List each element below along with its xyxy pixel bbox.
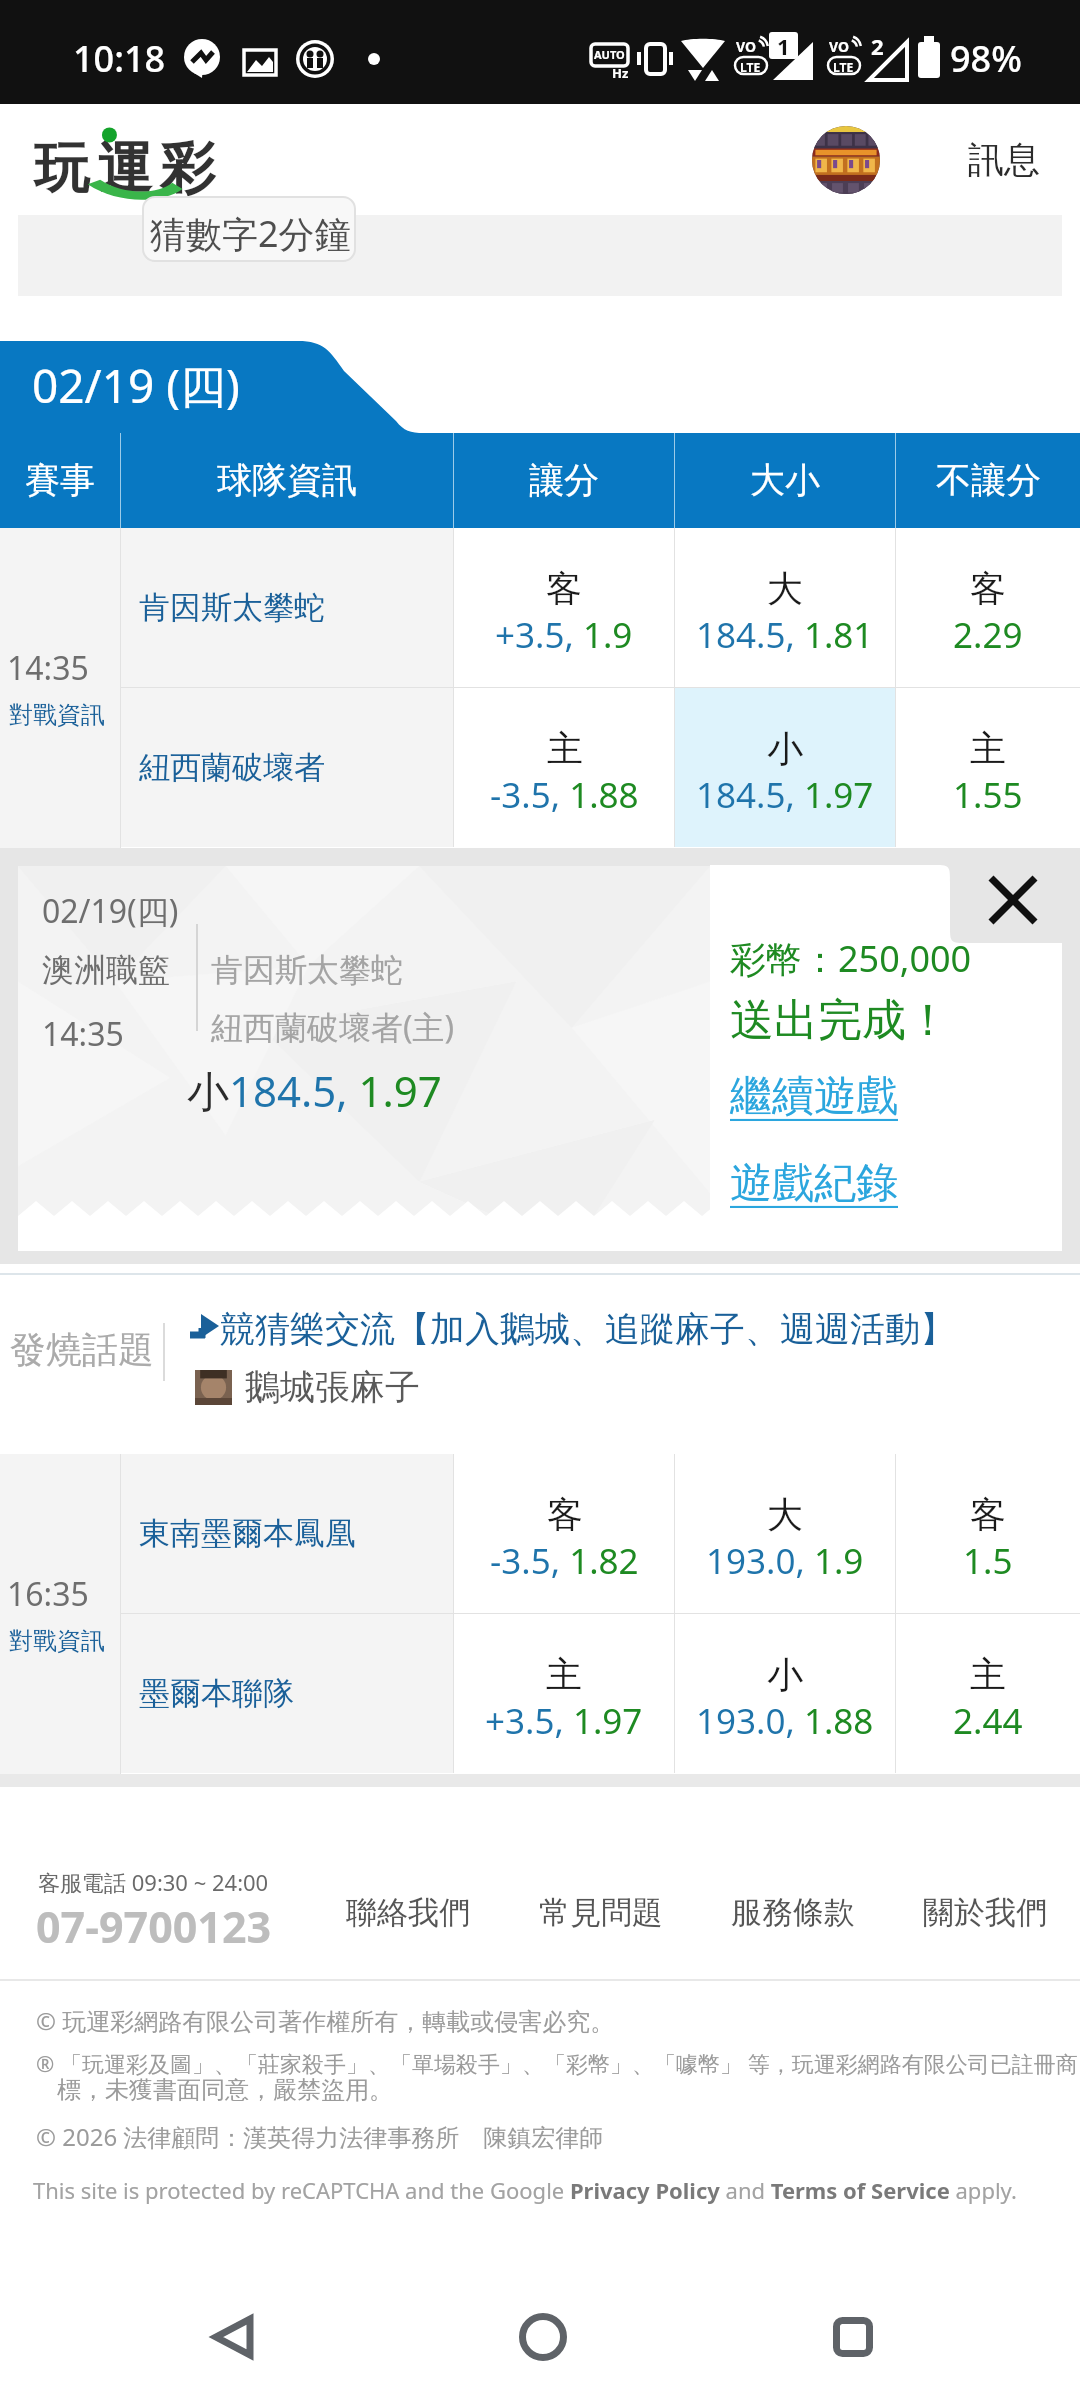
staticText: 澳洲職籃: [42, 950, 170, 990]
staticText: VO: [829, 37, 850, 56]
button[interactable]: 客: [454, 528, 674, 687]
staticText: 02/19(四): [42, 889, 179, 933]
staticText: 主: [546, 1652, 582, 1697]
button[interactable]: 客: [896, 528, 1080, 687]
staticText: VO: [736, 37, 757, 56]
staticText: © 玩運彩網路有限公司著作權所有，轉載或侵害必究。: [36, 2004, 615, 2037]
button[interactable]: 客: [896, 1454, 1080, 1613]
button[interactable]: Back: [187, 2291, 279, 2383]
staticText: 猜數字2分鐘: [150, 209, 351, 258]
button[interactable]: 關於我們: [909, 1881, 1061, 1943]
staticText: 不讓分: [936, 458, 1041, 502]
staticText: LTE: [740, 59, 761, 75]
button[interactable]: 小: [675, 1614, 895, 1773]
staticText: 讓分: [529, 458, 599, 502]
staticText: AUTO: [594, 47, 625, 62]
button[interactable]: 鵝城張麻子: [195, 1365, 420, 1409]
button[interactable]: 主: [896, 688, 1080, 847]
button[interactable]: Home: [497, 2291, 589, 2383]
staticText: 肯因斯太攀蛇: [139, 588, 325, 627]
staticText: 07-9700123: [36, 1897, 272, 1956]
button[interactable]: 主: [454, 1614, 674, 1773]
staticText: 東南墨爾本鳳凰: [139, 1514, 356, 1553]
button[interactable]: 肯因斯太攀蛇: [121, 528, 453, 687]
button[interactable]: 大: [675, 1454, 895, 1613]
staticText: 14:35: [42, 1012, 124, 1056]
staticText: 聯絡我們: [346, 1893, 470, 1932]
staticText: 紐西蘭破壞者: [139, 748, 325, 787]
staticText: 2.44: [953, 1697, 1023, 1745]
button[interactable]: 東南墨爾本鳳凰: [121, 1454, 453, 1613]
staticText: 主: [547, 726, 583, 771]
staticText: 賽事: [25, 458, 95, 502]
staticText: 常見問題: [539, 1893, 663, 1932]
button[interactable]: 主: [454, 688, 674, 847]
staticText: LTE: [833, 59, 854, 75]
staticText: +3.5, 1.97: [485, 1697, 643, 1745]
button[interactable]: 主: [896, 1614, 1080, 1773]
staticText: -3.5, 1.82: [490, 1537, 639, 1585]
staticText: 競猜樂交流【加入鵝城、追蹤麻子、週週活動】: [220, 1307, 955, 1351]
staticText: 主: [970, 1652, 1006, 1697]
button[interactable]: 大: [675, 528, 895, 687]
button[interactable]: 客: [454, 1454, 674, 1613]
button[interactable]: 常見問題: [525, 1881, 677, 1943]
button[interactable]: 對戰資訊: [9, 700, 105, 730]
staticText: 16:35: [7, 1572, 89, 1616]
staticText: This site is protected by reCAPTCHA and …: [33, 2175, 1017, 2205]
staticText: 1.55: [953, 771, 1023, 819]
staticText: 大小: [750, 458, 820, 502]
staticText: 服務條款: [731, 1893, 855, 1932]
staticText: 02/19 (四): [32, 354, 240, 417]
staticText: 10:18: [73, 34, 166, 83]
staticText: 客: [970, 566, 1006, 611]
staticText: 客: [547, 1492, 583, 1537]
staticText: 184.5, 1.97: [696, 771, 874, 819]
staticText: 193.0, 1.9: [706, 1537, 864, 1585]
button[interactable]: 遊戲紀錄: [730, 1157, 898, 1210]
staticText: Hz: [612, 64, 629, 82]
staticText: 大: [767, 566, 803, 611]
button[interactable]: 競猜樂交流【加入鵝城、追蹤麻子、週週活動】: [190, 1307, 955, 1351]
staticText: ® 「玩運彩及圖」、「莊家殺手」、「單場殺手」、「彩幣」、「噱幣」 等，玩運彩網…: [36, 2048, 1078, 2078]
staticText: 193.0, 1.88: [696, 1697, 874, 1745]
button[interactable]: Account: [812, 126, 880, 194]
staticText: 2: [871, 31, 884, 61]
staticText: 小: [767, 1652, 803, 1697]
staticText: +3.5, 1.9: [495, 611, 633, 659]
staticText: 肯因斯太攀蛇: [211, 950, 403, 990]
button[interactable]: 紐西蘭破壞者: [121, 688, 453, 847]
button[interactable]: 墨爾本聯隊: [121, 1614, 453, 1773]
button[interactable]: 訊息: [968, 137, 1040, 182]
staticText: 客: [970, 1492, 1006, 1537]
staticText: 客: [546, 566, 582, 611]
staticText: 98%: [950, 34, 1022, 83]
staticText: 紐西蘭破壞者(主): [211, 1005, 455, 1049]
staticText: 大: [767, 1492, 803, 1537]
staticText: 墨爾本聯隊: [139, 1674, 294, 1713]
staticText: 送出完成！: [730, 993, 950, 1048]
staticText: 關於我們: [923, 1893, 1047, 1932]
staticText: 客服電話 09:30 ~ 24:00: [38, 1867, 269, 1897]
button[interactable]: 繼續遊戲: [730, 1070, 898, 1123]
staticText: 主: [970, 726, 1006, 771]
staticText: -3.5, 1.88: [490, 771, 639, 819]
staticText: 小: [767, 726, 803, 771]
button[interactable]: Close: [963, 850, 1063, 950]
staticText: 發燒話題: [10, 1327, 154, 1372]
staticText: © 2026 法律顧問：漢英得力法律事務所 陳鎮宏律師: [36, 2120, 604, 2153]
button[interactable]: 小: [675, 688, 895, 847]
staticText: 184.5, 1.81: [696, 611, 874, 659]
button[interactable]: Recents: [807, 2291, 899, 2383]
button[interactable]: 聯絡我們: [332, 1881, 484, 1943]
staticText: 鵝城張麻子: [245, 1365, 420, 1409]
staticText: 彩幣：250,000: [730, 934, 972, 983]
staticText: 1: [777, 31, 790, 61]
button[interactable]: 服務條款: [717, 1881, 869, 1943]
staticText: 14:35: [7, 646, 89, 690]
staticText: 小184.5, 1.97: [187, 1062, 442, 1119]
staticText: 標，未獲書面同意，嚴禁盜用。: [57, 2075, 393, 2105]
staticText: 1.5: [963, 1537, 1013, 1585]
button[interactable]: 對戰資訊: [9, 1626, 105, 1656]
staticText: 玩運彩: [30, 134, 219, 203]
